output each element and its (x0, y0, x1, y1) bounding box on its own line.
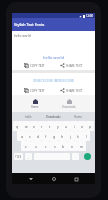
staticText: hello (25, 115, 32, 119)
button[interactable]: k (74, 131, 82, 141)
staticText: j (70, 134, 71, 139)
button[interactable]: c (41, 141, 50, 151)
button[interactable]: Downloads (59, 98, 79, 110)
button[interactable]: x (31, 141, 41, 151)
button[interactable]: q (13, 121, 22, 131)
staticText: i (74, 124, 75, 129)
button[interactable]: y (54, 121, 62, 131)
staticText: t (49, 124, 51, 129)
button[interactable]: s (26, 131, 34, 141)
button[interactable]: j (66, 131, 74, 141)
button[interactable]: t (46, 121, 54, 131)
staticText: hello world (43, 55, 64, 60)
button[interactable]: Home (28, 98, 42, 110)
staticText: m (80, 144, 84, 149)
staticText: a (21, 134, 23, 139)
staticText: q (16, 124, 19, 129)
button[interactable]: . (72, 153, 79, 160)
staticText: , (28, 155, 29, 159)
staticText: o (81, 124, 84, 129)
staticText: . (75, 155, 76, 159)
staticText: hello world (14, 34, 31, 38)
button[interactable]: b (59, 141, 68, 151)
button[interactable]: , (25, 153, 32, 160)
button[interactable]: Enter (84, 153, 91, 160)
button[interactable]: Recents (72, 175, 80, 183)
staticText: l (86, 134, 87, 139)
button[interactable]: ?123 (14, 153, 23, 160)
staticText: w (25, 124, 28, 129)
staticText: 12:00 (86, 14, 93, 18)
staticText: Stylish Text Fonts (14, 22, 45, 27)
staticText: Downloads (62, 105, 76, 109)
staticText: COPY TEXT (30, 89, 45, 93)
button[interactable]: u (62, 121, 70, 131)
staticText: f (45, 134, 47, 139)
staticText: n (71, 144, 74, 149)
staticText: ⓗⓔⓛⓛⓞ ⓦⓞⓡⓛⓓ (33, 78, 75, 83)
button[interactable]: m (77, 141, 86, 151)
staticText: SHARE TEXT (66, 89, 83, 93)
button[interactable]: n (68, 141, 77, 151)
button[interactable]: z (21, 141, 31, 151)
button[interactable]: h (58, 131, 66, 141)
button[interactable]: f (42, 131, 50, 141)
button[interactable]: d (34, 131, 42, 141)
button[interactable]: r (38, 121, 46, 131)
staticText: v (54, 144, 56, 149)
button[interactable]: g (50, 131, 58, 141)
staticText: COPY TEXT (30, 64, 45, 68)
staticText: p (89, 124, 92, 129)
button[interactable]: o (78, 121, 86, 131)
button[interactable]: COPY TEXT (22, 62, 47, 69)
button[interactable]: COPY TEXT (22, 87, 47, 94)
staticText: z (25, 144, 27, 149)
staticText: Downloads (46, 115, 61, 119)
staticText: s (29, 134, 31, 139)
staticText: Home (74, 115, 82, 119)
button[interactable]: SHARE TEXT (58, 87, 85, 94)
staticText: y (57, 124, 59, 129)
button[interactable]: Home (50, 175, 58, 183)
staticText: Home (31, 105, 39, 109)
staticText: d (37, 134, 40, 139)
button[interactable]: p (86, 121, 94, 131)
staticText: k (77, 134, 79, 139)
button[interactable]: v (50, 141, 59, 151)
staticText: u (65, 124, 68, 129)
staticText: r (41, 124, 43, 129)
button[interactable]: Back (27, 175, 35, 183)
button[interactable]: w (22, 121, 30, 131)
button[interactable]: l (82, 131, 90, 141)
staticText: SHARE TEXT (66, 64, 83, 68)
staticText: x (35, 144, 37, 149)
button[interactable]: SHARE TEXT (58, 62, 85, 69)
button[interactable]: a (17, 131, 26, 141)
staticText: e (33, 124, 35, 129)
staticText: ?123 (15, 155, 22, 159)
button[interactable]: i (70, 121, 78, 131)
staticText: h (61, 134, 64, 139)
staticText: c (45, 144, 47, 149)
button[interactable]: e (30, 121, 38, 131)
staticText: g (53, 134, 56, 139)
staticText: b (62, 144, 65, 149)
